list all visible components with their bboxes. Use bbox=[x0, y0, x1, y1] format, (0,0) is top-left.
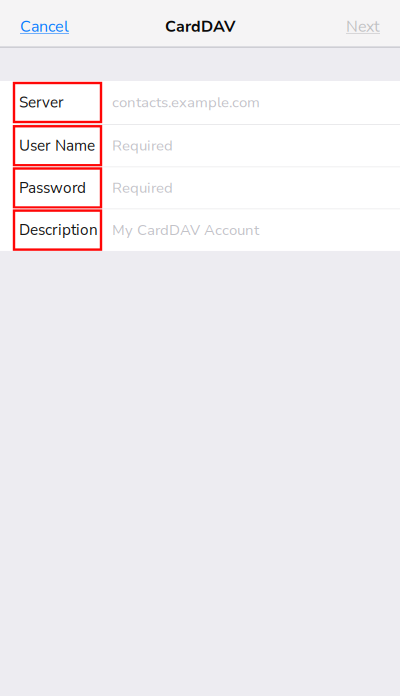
button[interactable]: Cancel bbox=[20, 2, 77, 46]
staticText: contacts.example.com bbox=[112, 92, 260, 112]
staticText: Required bbox=[112, 136, 173, 156]
staticText: User Name bbox=[19, 135, 95, 156]
staticText: Description bbox=[19, 220, 98, 240]
staticText: My CardDAV Account bbox=[112, 220, 259, 240]
staticText: Next bbox=[346, 16, 380, 37]
staticText: CardDAV bbox=[165, 16, 235, 37]
staticText: Password bbox=[19, 178, 86, 198]
button[interactable]: Password bbox=[0, 167, 400, 208]
button[interactable]: Description bbox=[0, 209, 400, 251]
button[interactable]: Next bbox=[338, 2, 380, 46]
staticText: Cancel bbox=[20, 16, 69, 37]
button[interactable]: Server bbox=[0, 81, 400, 124]
button[interactable]: User Name bbox=[0, 125, 400, 166]
staticText: Required bbox=[112, 178, 173, 198]
staticText: Server bbox=[19, 92, 64, 113]
